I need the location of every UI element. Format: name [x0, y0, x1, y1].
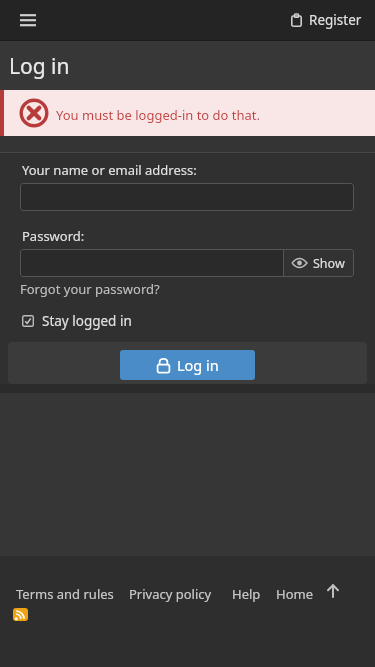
staticText: You must be logged-in to do that. [56, 106, 261, 124]
staticText: Register [309, 11, 362, 29]
button[interactable]: Help [232, 585, 261, 603]
button[interactable]: Privacy policy [129, 585, 212, 603]
button[interactable]: Terms and rules [16, 585, 114, 603]
staticText: Forgot your password? [20, 280, 160, 298]
staticText: Home [276, 585, 313, 603]
staticText: Help [232, 585, 261, 603]
staticText: Log in [177, 355, 219, 375]
button[interactable]: Stay logged in [22, 312, 132, 330]
staticText: Password: [22, 227, 85, 245]
button[interactable] [324, 582, 342, 600]
button[interactable]: Show [283, 249, 354, 277]
button[interactable]: Register [291, 0, 362, 40]
button[interactable]: Show [20, 249, 354, 277]
button[interactable]: Forgot your password? [20, 280, 160, 298]
staticText: Stay logged in [42, 312, 132, 330]
staticText: Log in [9, 52, 70, 81]
button[interactable]: Log in [120, 350, 255, 380]
button[interactable]: Home [276, 585, 313, 603]
button[interactable] [20, 183, 354, 211]
staticText: Terms and rules [16, 585, 114, 603]
staticText: Privacy policy [129, 585, 212, 603]
staticText: Show [313, 255, 345, 272]
staticText: Your name or email address: [22, 161, 197, 179]
button[interactable] [13, 608, 28, 621]
button[interactable] [12, 4, 44, 36]
